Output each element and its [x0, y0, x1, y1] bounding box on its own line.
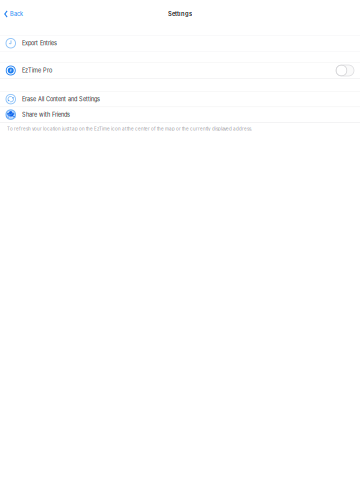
- staticText: Export Entries: [22, 40, 57, 47]
- staticText: Share with Friends: [22, 111, 70, 118]
- button[interactable]: Share with Friends: [0, 107, 360, 122]
- button[interactable]: EzTime Pro, off: [336, 65, 354, 76]
- button[interactable]: Erase All Content and Settings: [0, 92, 360, 107]
- staticText: Settings: [168, 10, 192, 17]
- button[interactable]: Back: [0, 7, 28, 21]
- button[interactable]: Export Entries: [0, 35, 360, 51]
- staticText: To refresh your location just tap on the…: [7, 126, 252, 131]
- staticText: EzTime Pro: [22, 67, 52, 74]
- staticText: Back: [10, 11, 23, 17]
- button[interactable]: EzTime Pro: [0, 63, 360, 78]
- staticText: Erase All Content and Settings: [22, 96, 100, 103]
